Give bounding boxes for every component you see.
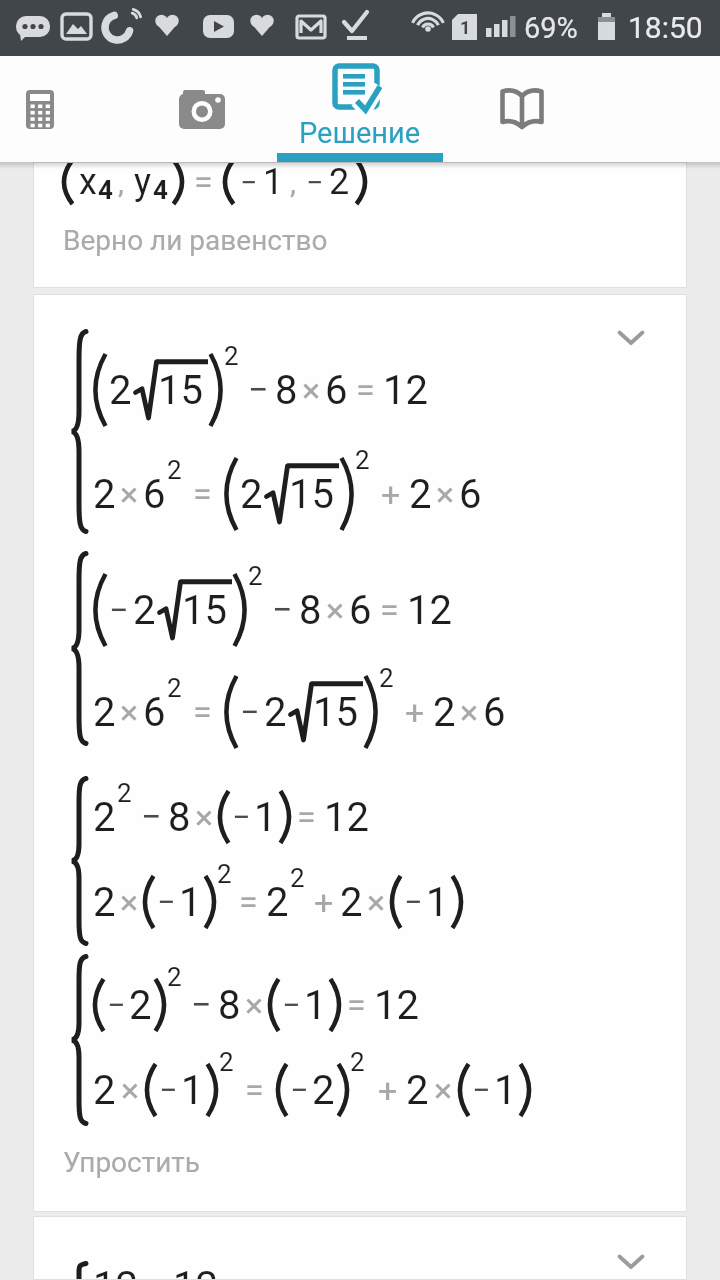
button[interactable] [477,56,567,162]
staticText: 69% [524,11,578,45]
staticText: − [159,1071,178,1109]
staticText: × [120,474,139,514]
staticText: 1 [304,982,327,1029]
staticText: 1 [494,1067,517,1114]
staticText: 6 [483,689,506,736]
staticText: 1 [254,794,277,841]
button[interactable] [157,56,247,162]
staticText: + [405,692,425,732]
staticText: 2 [290,863,305,893]
staticText: 2 [133,587,156,634]
staticText: − [472,1071,491,1109]
staticText: − [306,165,324,200]
button[interactable] [0,56,85,162]
staticText: 2 [93,794,116,841]
staticText: 2 [329,162,350,203]
button[interactable] [609,320,653,356]
staticText: 4 [153,175,168,205]
staticText: 6 [143,689,166,736]
staticText: 15 [158,367,203,414]
staticText: × [434,1070,453,1110]
staticText: 6 [349,587,372,634]
staticText: 6 [143,471,166,518]
staticText: × [436,474,455,514]
staticText: − [248,369,269,411]
staticText: 4 [98,175,113,205]
staticText: 2 [167,455,182,485]
staticText: 2 [409,471,432,518]
staticText: 2 [93,1067,116,1114]
staticText: × [120,882,139,922]
staticText: 2 [433,689,456,736]
button[interactable]: Решение [280,56,440,162]
staticText: × [245,985,264,1025]
staticText: 2 [93,471,116,518]
staticText: − [282,986,301,1024]
staticText: × [326,590,345,630]
staticText: + [378,1070,398,1110]
staticText: 1 [179,879,202,926]
staticText: 15 [313,689,358,736]
staticText: = [380,590,399,630]
staticText: 2 [350,1047,365,1077]
staticText: 12 [383,367,428,414]
staticText: − [272,589,293,631]
staticText: − [240,165,258,200]
staticText: − [232,798,251,836]
staticText: 2 [355,445,370,475]
staticText: 2 [93,879,116,926]
staticText: 2 [266,879,289,926]
staticText: 2 [340,879,363,926]
staticText: × [302,370,321,410]
staticText: 2 [240,471,263,518]
staticText: , [118,165,124,200]
staticText: 12 [324,794,369,841]
staticText: 12 [374,982,419,1029]
staticText: − [290,1071,309,1109]
staticText: = [245,1070,264,1110]
staticText: 8 [218,982,241,1029]
staticText: Решение [299,116,421,150]
staticText: − [191,984,212,1026]
staticText: 6 [325,367,348,414]
staticText: , [290,165,296,200]
staticText: 2 [93,689,116,736]
staticText: 12 [93,1263,138,1280]
staticText: 1 [426,879,449,926]
staticText: + [314,882,334,922]
staticText: y [134,162,152,203]
staticText: 2 [219,1047,234,1077]
staticText: 2 [217,859,232,889]
staticText: = [146,1266,165,1280]
staticText: 2 [406,1067,429,1114]
staticText: 2 [117,778,132,808]
staticText: 2 [224,341,239,371]
staticText: 2 [167,673,182,703]
staticText: 15 [182,587,227,634]
staticText: 6 [459,471,482,518]
staticText: 15 [289,471,334,518]
staticText: 18:50 [628,10,703,45]
staticText: 1 [181,1067,204,1114]
staticText: = [193,474,212,514]
staticText: 8 [275,367,298,414]
staticText: 1 [263,162,284,203]
staticText: 2 [379,663,394,693]
staticText: − [157,883,176,921]
staticText: × [121,1070,140,1110]
staticText: 2 [167,962,182,992]
staticText: × [120,692,139,732]
staticText: 1 [460,17,471,38]
staticText: − [109,590,129,630]
staticText: x [79,162,97,203]
staticText: − [141,796,162,838]
staticText: × [460,692,479,732]
button[interactable] [609,1244,653,1280]
staticText: 2 [264,689,287,736]
staticText: = [347,985,366,1025]
staticText: 8 [299,587,322,634]
staticText: = [356,370,375,410]
staticText: 12 [407,587,452,634]
staticText: Упростить [63,1146,201,1179]
staticText: × [195,797,214,837]
